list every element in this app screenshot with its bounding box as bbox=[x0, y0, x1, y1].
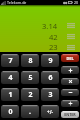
staticText: 20 bbox=[74, 0, 79, 5]
button[interactable]: . bbox=[21, 105, 39, 118]
staticText: . bbox=[29, 107, 31, 117]
staticText: 5 bbox=[28, 73, 33, 83]
button[interactable]: ENTER bbox=[61, 111, 79, 118]
button[interactable]: 5 bbox=[21, 71, 39, 84]
button[interactable]: Plus bbox=[61, 66, 79, 74]
staticText: 8 bbox=[28, 56, 33, 66]
button[interactable]: 42 bbox=[0, 31, 80, 42]
button[interactable]: 4 bbox=[1, 71, 19, 84]
staticText: Telekom.de bbox=[7, 0, 27, 5]
button[interactable]: +/- bbox=[41, 105, 59, 118]
button[interactable]: 0 bbox=[1, 105, 19, 118]
staticText: 9 bbox=[48, 56, 53, 66]
button[interactable]: 3.14 bbox=[0, 20, 80, 31]
staticText: 2 bbox=[28, 90, 33, 100]
button[interactable]: 2 bbox=[21, 88, 39, 101]
button[interactable]: 23 bbox=[0, 42, 80, 52]
staticText: 3.14 bbox=[42, 21, 58, 31]
staticText: 7 bbox=[8, 56, 13, 66]
button[interactable]: 9 bbox=[41, 54, 59, 67]
staticText: +/- bbox=[47, 109, 53, 115]
staticText: 23 bbox=[49, 42, 58, 52]
button[interactable]: Multiply bbox=[61, 78, 79, 85]
staticText: 0 bbox=[8, 107, 13, 117]
staticText: 6 bbox=[48, 73, 53, 83]
button[interactable]: 8 bbox=[21, 54, 39, 67]
button[interactable]: 3 bbox=[41, 88, 59, 101]
staticText: 42 bbox=[49, 32, 58, 42]
button[interactable]: Divide bbox=[61, 100, 79, 107]
button[interactable]: 7 bbox=[1, 54, 19, 67]
button[interactable]: Minus bbox=[61, 89, 79, 96]
staticText: ENTER bbox=[64, 112, 76, 117]
staticText: 1 bbox=[8, 90, 13, 100]
button[interactable]: DEL bbox=[61, 54, 79, 62]
button[interactable]: 6 bbox=[41, 71, 59, 84]
button[interactable]: 1 bbox=[1, 88, 19, 101]
staticText: DEL bbox=[66, 56, 74, 61]
staticText: 4 bbox=[8, 73, 13, 83]
staticText: 3 bbox=[48, 90, 53, 100]
